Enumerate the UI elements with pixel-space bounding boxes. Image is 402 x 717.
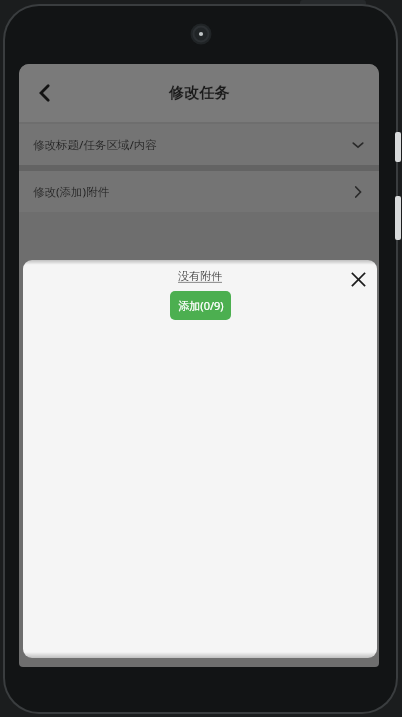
button[interactable]: 修改(添加)附件 <box>19 171 379 212</box>
button[interactable]: 添加(0/9) <box>170 291 231 320</box>
staticText: 修改标题/任务区域/内容 <box>33 137 157 153</box>
staticText: 修改(添加)附件 <box>33 184 110 200</box>
button[interactable]: 关闭 <box>341 262 375 296</box>
button[interactable]: 修改标题/任务区域/内容 <box>19 124 379 165</box>
staticText: 修改任务 <box>169 84 229 103</box>
staticText: 添加(0/9) <box>178 298 224 313</box>
staticText: 没有附件 <box>178 269 222 283</box>
button[interactable]: 返回 <box>23 71 67 115</box>
